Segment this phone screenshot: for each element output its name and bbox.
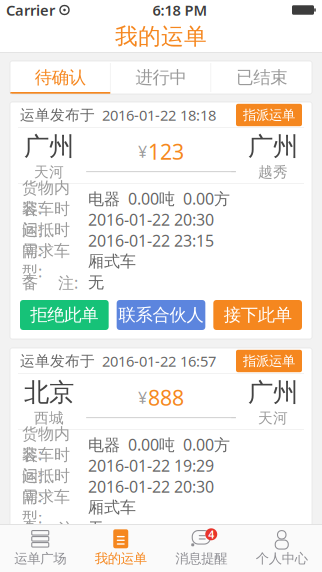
staticText: 拒绝此单 [30,304,98,326]
staticText: 无 [88,519,104,538]
button[interactable]: 我的运单 [80,526,161,570]
staticText: 备 注: [22,272,78,293]
staticText: 2016-01-22 23:15 [88,230,214,251]
staticText: 厢式车 [88,252,136,271]
staticText: 电器 0.00吨 0.00方 [88,434,230,455]
button[interactable]: 拒绝此单 [20,546,109,572]
staticText: 888 [148,383,184,412]
staticText: 已结束 [236,67,287,88]
button[interactable]: 4 [161,526,241,570]
staticText: 123 [148,137,184,166]
staticText: 西城 [34,409,64,427]
button[interactable]: 接下此单 [213,546,302,572]
button[interactable]: 运单广场 [0,526,80,570]
staticText: 运抵时间: [22,220,70,261]
staticText: 2016-01-22 18:18 [98,105,216,125]
button[interactable]: 已结束 [211,61,312,94]
staticText: 进行中 [135,67,186,88]
staticText: Carrier [6,0,55,20]
staticText: 装车时间: [22,199,70,240]
staticText: 个人中心 [256,550,308,567]
staticText: 需求车型: [22,487,70,528]
staticText: 越秀 [258,163,288,181]
staticText: ¥ [138,141,147,162]
staticText: 广州 [24,131,74,162]
staticText: 厢式车 [88,498,136,517]
staticText: 待确认 [35,67,86,88]
staticText: 2016-01-22 19:29 [88,455,214,476]
staticText: 天河 [34,163,64,181]
button[interactable]: 指派运单 [236,104,302,126]
staticText: 我的运单 [95,550,147,567]
staticText: ¥ [138,387,147,408]
staticText: 无 [88,273,104,292]
staticText: 接下此单 [224,304,292,326]
staticText: 2016-01-22 20:30 [88,209,214,230]
staticText: 6:18 PM [152,0,207,20]
button[interactable]: 进行中 [111,61,211,94]
staticText: 天河 [258,409,288,427]
staticText: 联系合伙人 [118,304,203,326]
button[interactable]: 联系合伙人 [117,300,205,330]
staticText: 广州 [248,131,298,162]
staticText: 运抵时间: [22,466,70,507]
button[interactable]: 待确认 [10,61,111,94]
staticText: 我的运单 [115,23,207,50]
staticText: 接下此单 [224,550,292,572]
staticText: 运单发布于 [20,106,95,124]
button[interactable]: 联系合伙人 [117,546,205,572]
button[interactable]: 个人中心 [241,526,322,570]
staticText: 货物内容: [22,178,70,219]
staticText: 拒绝此单 [30,550,98,572]
staticText: 2016-01-22 16:57 [98,351,216,371]
staticText: 运单广场 [14,550,66,567]
staticText: 需求车型: [22,241,70,282]
staticText: 联系合伙人 [118,550,203,572]
button[interactable]: 指派运单 [236,350,302,372]
staticText: 广州 [248,377,298,408]
staticText: 装车时间: [22,445,70,486]
button[interactable]: 拒绝此单 [20,300,109,330]
staticText: 指派运单 [243,353,295,369]
staticText: 北京 [24,377,74,408]
staticText: 电器 0.00吨 0.00方 [88,188,230,209]
button[interactable]: 接下此单 [213,300,302,330]
staticText: 指派运单 [243,107,295,123]
staticText: 备 注: [22,518,78,539]
staticText: 2016-01-22 20:30 [88,476,214,497]
staticText: 4 [208,527,214,541]
staticText: 消息提醒 [175,550,227,567]
staticText: 货物内容: [22,424,70,465]
staticText: 运单发布于 [20,352,95,370]
